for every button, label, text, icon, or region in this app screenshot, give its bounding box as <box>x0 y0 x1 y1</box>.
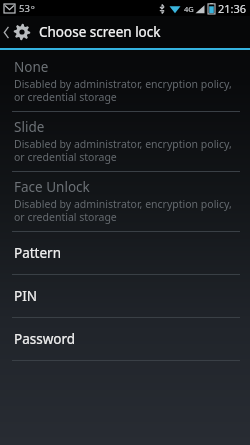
staticText: None <box>14 58 49 76</box>
staticText: 21:36 <box>218 1 247 16</box>
staticText: o <box>31 3 35 11</box>
staticText: Password <box>14 330 76 348</box>
staticText: 4G <box>184 4 194 14</box>
button[interactable]: PIN <box>0 275 250 317</box>
staticText: Slide <box>14 118 45 136</box>
staticText: PIN <box>14 287 38 305</box>
staticText: Disabled by administrator, encryption po… <box>14 77 238 104</box>
button[interactable]: Pattern <box>0 232 250 274</box>
button[interactable]: Password <box>0 318 250 360</box>
button[interactable]: Navigate up <box>0 16 33 48</box>
button[interactable]: Slide <box>0 112 250 171</box>
staticText: Face Unlock <box>14 178 90 196</box>
button[interactable]: None <box>0 52 250 111</box>
staticText: Disabled by administrator, encryption po… <box>14 197 238 224</box>
staticText: Disabled by administrator, encryption po… <box>14 137 238 164</box>
staticText: Choose screen lock <box>39 23 161 41</box>
button[interactable]: Face Unlock <box>0 172 250 231</box>
staticText: Pattern <box>14 244 62 262</box>
staticText: 53 <box>19 2 30 15</box>
